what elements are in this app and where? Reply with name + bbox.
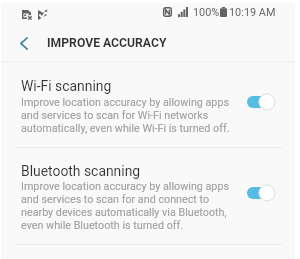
staticText: 10:19 AM — [229, 6, 276, 18]
button[interactable]: Bluetooth scanning — [21, 163, 141, 179]
button[interactable]: Wi-Fi scanning — [21, 78, 112, 94]
button[interactable]: Bluetooth scanning switch — [244, 182, 278, 203]
button[interactable]: Wi-Fi scanning switch — [244, 91, 278, 112]
staticText: 100% — [193, 6, 220, 18]
button[interactable]: Navigate up — [13, 32, 35, 54]
button[interactable]: Improve location accuracy by allowing ap… — [21, 180, 229, 232]
button[interactable]: Improve location accuracy by allowing ap… — [21, 96, 230, 135]
button[interactable]: IMPROVE ACCURACY — [47, 36, 167, 50]
